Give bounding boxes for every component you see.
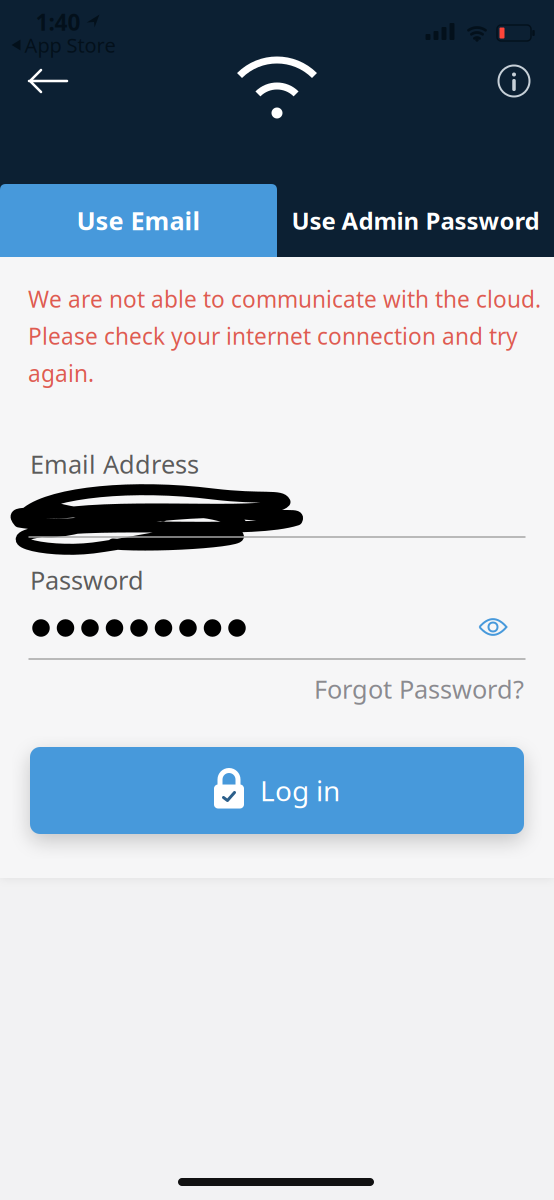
staticText: 1:40 [35, 7, 80, 37]
staticText: Use Email [76, 204, 200, 237]
button[interactable]: Back [19, 58, 77, 104]
staticText: Email Address [30, 447, 199, 481]
button[interactable]: Use Email [0, 184, 277, 257]
staticText: Forgot Password? [314, 672, 524, 706]
staticText: again. [28, 358, 94, 388]
staticText: We are not able to communicate with the … [28, 284, 541, 314]
staticText: Use Admin Password [291, 205, 539, 236]
staticText: App Store [24, 32, 115, 58]
button[interactable]: Log in [30, 747, 524, 834]
staticText: Please check your internet connection an… [28, 321, 518, 351]
staticText: Password [30, 563, 144, 597]
staticText: Log in [260, 772, 340, 809]
button[interactable]: Use Admin Password [275, 184, 554, 257]
button[interactable]: Forgot Password? [314, 672, 524, 706]
button[interactable]: Info [490, 57, 537, 104]
button[interactable]: Show password [473, 611, 513, 643]
